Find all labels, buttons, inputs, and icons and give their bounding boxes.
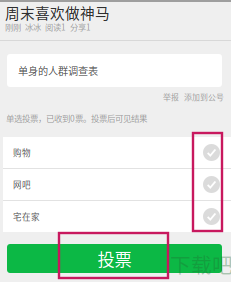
staticText: 举报 bbox=[163, 91, 179, 102]
staticText: 刚刚 冰冰 阅读1 分享1 bbox=[5, 21, 91, 33]
button[interactable]: 网吧 bbox=[3, 169, 231, 200]
staticText: 网吧 bbox=[13, 178, 31, 191]
staticText: 购物 bbox=[13, 146, 31, 159]
staticText: 宅在家 bbox=[13, 210, 40, 223]
button[interactable]: 投票 bbox=[7, 244, 222, 273]
button[interactable]: 宅在家 bbox=[3, 201, 231, 232]
staticText: 下载吧 bbox=[170, 249, 231, 279]
button[interactable]: 添加到公号 bbox=[184, 91, 224, 102]
button[interactable]: 举报 bbox=[163, 91, 179, 102]
staticText: 单选投票，已收到0票。投票后可见结果 bbox=[6, 112, 147, 124]
staticText: 单身的人群调查表 bbox=[18, 63, 98, 78]
button[interactable]: 购物 bbox=[3, 137, 231, 168]
staticText: 添加到公号 bbox=[184, 91, 224, 102]
staticText: 投票 bbox=[97, 246, 131, 271]
staticText: 周末喜欢做神马 bbox=[5, 2, 110, 23]
